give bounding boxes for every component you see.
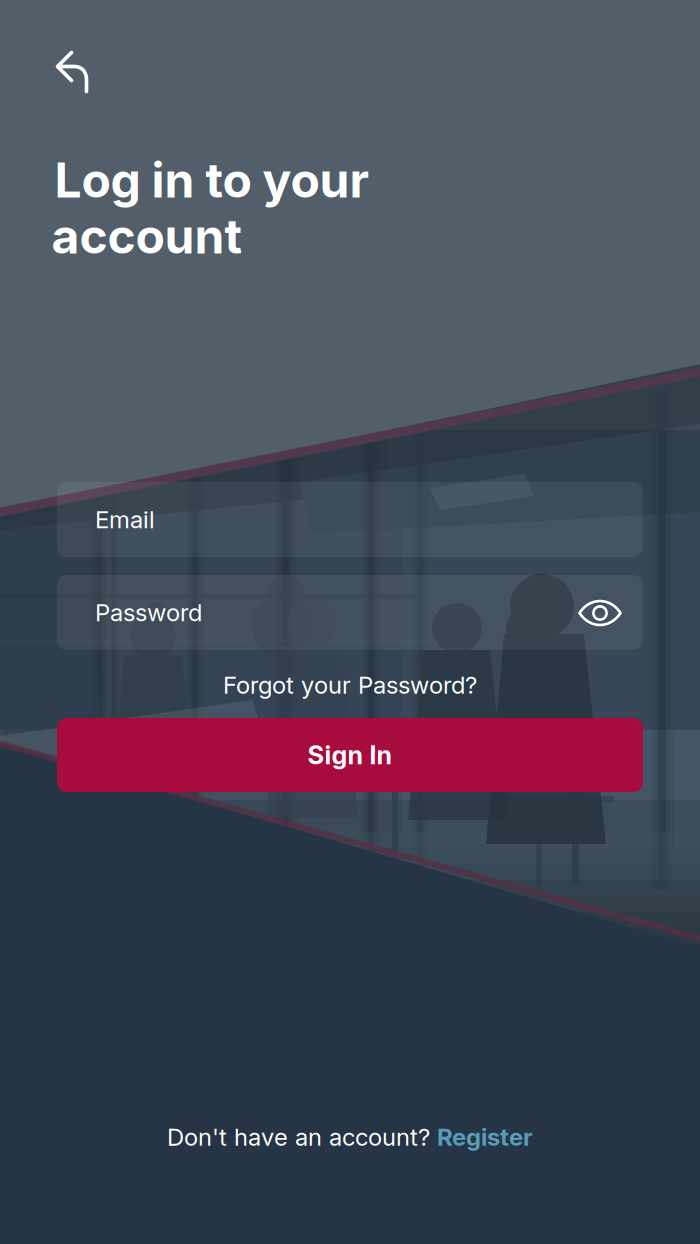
button[interactable]: Back [34, 30, 110, 114]
staticText: Don't have an account? [167, 1122, 437, 1151]
staticText: Password [95, 598, 202, 627]
button[interactable]: Sign In [57, 718, 643, 792]
staticText: Log in to your [54, 151, 369, 209]
button[interactable]: Show password [563, 576, 637, 650]
staticText: Register [437, 1122, 533, 1151]
staticText: Email [95, 505, 155, 534]
button[interactable]: Register [437, 1122, 533, 1151]
button[interactable]: Forgot your Password? [200, 661, 500, 709]
staticText: Sign In [307, 740, 392, 770]
button[interactable]: Email [57, 482, 643, 557]
button[interactable]: Password [57, 575, 643, 650]
staticText: Forgot your Password? [223, 670, 477, 699]
staticText: account [51, 207, 242, 265]
